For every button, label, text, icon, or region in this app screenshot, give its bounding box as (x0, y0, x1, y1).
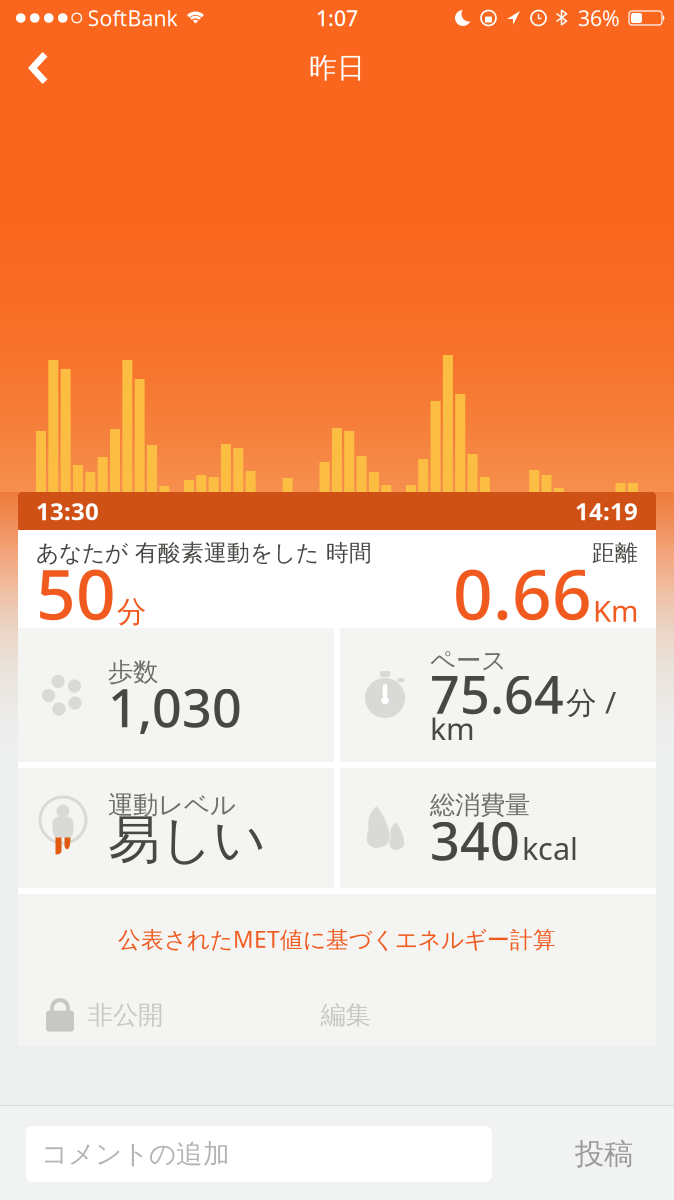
staticText: 昨日 (309, 51, 365, 85)
staticText: 分 / (566, 681, 616, 722)
staticText: SoftBank (87, 4, 177, 32)
staticText: 14:19 (575, 495, 638, 527)
staticText: 非公開 (88, 999, 163, 1031)
staticText: 分 (117, 594, 146, 630)
staticText: 13:30 (36, 495, 99, 527)
staticText: kcal (522, 828, 578, 868)
staticText: Km (593, 591, 638, 630)
staticText: 距離 (592, 539, 638, 567)
staticText: 投稿 (575, 1136, 633, 1172)
staticText: 75.64 (430, 659, 564, 728)
button[interactable]: コメントの追加 (25, 1125, 493, 1183)
button[interactable]: Back (0, 44, 48, 92)
staticText: 易しい (108, 808, 266, 872)
staticText: あなたが 有酸素運動をした 時間 (36, 539, 372, 567)
staticText: 0.66 (453, 547, 592, 639)
staticText: 編集 (320, 999, 370, 1031)
button[interactable]: 非公開 (18, 999, 163, 1031)
staticText: 340 (430, 805, 520, 875)
staticText: 50 (36, 547, 116, 639)
staticText: 1,030 (108, 672, 242, 742)
button[interactable]: 投稿 (575, 1136, 674, 1172)
button[interactable]: 編集 (320, 999, 370, 1031)
staticText: 運動レベル (108, 789, 236, 820)
button[interactable]: 公表されたMET値に基づくエネルギー計算 (118, 894, 556, 954)
staticText: km (430, 708, 475, 749)
staticText: 公表されたMET値に基づくエネルギー計算 (118, 924, 556, 954)
staticText: 1:07 (316, 4, 358, 32)
staticText: 総消費量 (430, 789, 530, 820)
staticText: 36% (578, 4, 620, 32)
staticText: コメントの追加 (41, 1138, 230, 1170)
staticText: 歩数 (108, 656, 158, 687)
staticText: ペース (430, 645, 507, 676)
